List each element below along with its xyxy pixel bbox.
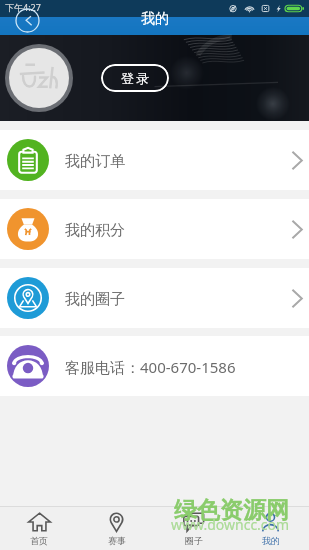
button[interactable]: 登录	[101, 64, 169, 92]
staticText: 我的	[262, 535, 280, 546]
button[interactable]: Back	[15, 8, 40, 33]
button[interactable]: 我的圈子	[0, 268, 309, 328]
button[interactable]: 我的积分	[0, 199, 309, 259]
staticText: www.downcc.com	[171, 515, 290, 534]
staticText: 圈子	[185, 535, 203, 546]
button[interactable]: 我的	[232, 507, 309, 550]
staticText: 登录	[120, 70, 150, 86]
staticText: 我的圈子	[65, 290, 125, 309]
button[interactable]: Avatar	[5, 44, 73, 112]
staticText: 首页	[30, 535, 48, 546]
staticText: 下午4:27	[5, 1, 41, 13]
button[interactable]: 赛事	[78, 507, 155, 550]
button[interactable]: 首页	[0, 507, 78, 550]
staticText: 客服电话：400-670-1586	[65, 357, 236, 377]
staticText: 绿色资源网	[174, 496, 289, 525]
staticText: 我的积分	[65, 221, 125, 240]
staticText: 我的订单	[65, 152, 125, 171]
button[interactable]: 客服电话：400-670-1586	[0, 336, 309, 396]
staticText: 赛事	[108, 535, 126, 546]
button[interactable]: 圈子	[155, 507, 232, 550]
button[interactable]: 我的订单	[0, 130, 309, 190]
staticText: 我的	[141, 10, 169, 28]
